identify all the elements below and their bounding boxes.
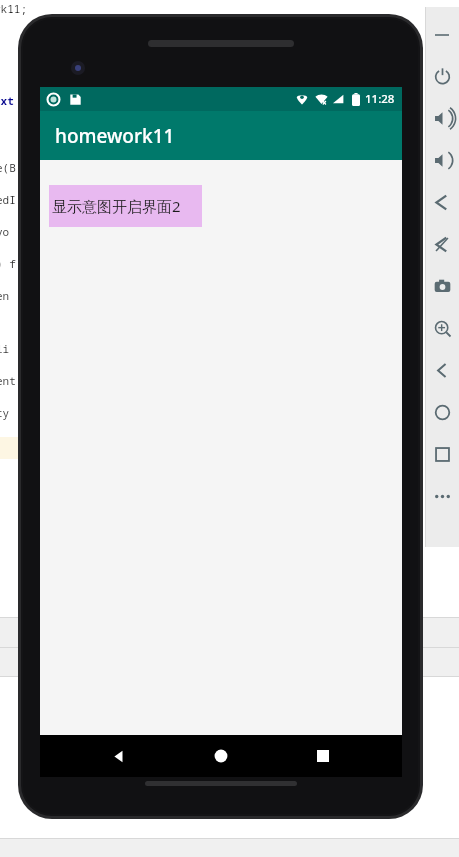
staticText: li [0,341,10,356]
button[interactable]: Rotate left [426,181,459,223]
button[interactable]: Volume down [426,139,459,181]
button[interactable]: 显示意图开启界面2 [49,185,202,227]
staticText: e(B [0,160,16,175]
staticText: ty [0,405,10,420]
button[interactable]: More [426,475,459,517]
button[interactable]: Rotate right [426,223,459,265]
button[interactable]: Overview [426,433,459,475]
button[interactable]: Zoom [426,307,459,349]
staticText: ext [0,93,14,108]
button[interactable]: Volume up [426,97,459,139]
button[interactable]: Back [426,349,459,391]
button[interactable]: Screenshot [426,265,459,307]
staticText: rk11; [0,1,27,16]
button[interactable]: Recent apps [300,735,346,777]
staticText: ) f [0,256,16,271]
button[interactable]: Back [96,735,142,777]
staticText: en [0,288,10,303]
staticText: edI [0,192,16,207]
staticText: ent [0,373,16,388]
button[interactable]: Power [426,55,459,97]
staticText: yo [0,224,10,239]
staticText: 显示意图开启界面2 [52,196,181,216]
staticText: 11:28 [365,91,395,107]
staticText: homework11 [55,123,175,149]
button[interactable]: Minimize [430,23,454,47]
button[interactable]: Home [198,735,244,777]
button[interactable]: Home [426,391,459,433]
